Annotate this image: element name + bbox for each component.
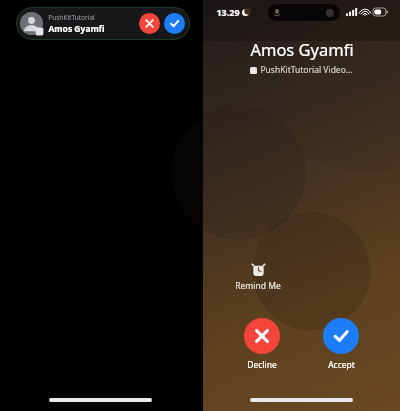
staticText: PushKitTutorial Video… <box>260 64 353 76</box>
staticText: Amos Gyamfi <box>250 38 354 60</box>
button[interactable]: Decline <box>139 13 160 34</box>
staticText: 13.29 <box>216 6 240 18</box>
staticText: PushKitTutorial <box>48 13 95 22</box>
staticText: Remind Me <box>235 280 281 292</box>
staticText: Decline <box>247 359 277 371</box>
button[interactable]: Accept <box>164 13 185 34</box>
staticText: Amos Gyamfi <box>48 23 105 35</box>
button[interactable]: Decline <box>242 316 282 373</box>
staticText: Accept <box>328 359 355 371</box>
button[interactable]: PushKitTutorial <box>16 7 190 40</box>
button[interactable]: Accept <box>321 316 361 373</box>
button[interactable]: Remind Me <box>233 262 283 294</box>
